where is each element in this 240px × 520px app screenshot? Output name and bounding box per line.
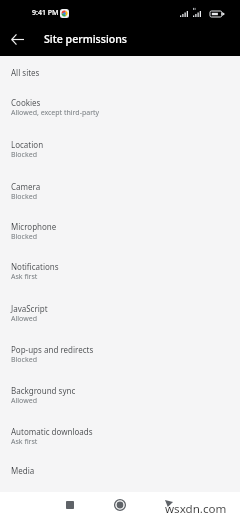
button[interactable]: Cookies xyxy=(0,87,240,128)
staticText: All sites xyxy=(11,67,40,78)
button[interactable]: Back xyxy=(161,496,176,511)
staticText: Blocked xyxy=(11,355,37,365)
staticText: Microphone xyxy=(11,221,57,232)
button[interactable]: Media xyxy=(0,455,240,485)
staticText: Site permissions xyxy=(44,32,128,46)
staticText: Allowed xyxy=(11,314,37,324)
staticText: JavaScript xyxy=(11,303,48,314)
button[interactable]: Camera xyxy=(0,171,240,212)
staticText: Blocked xyxy=(11,232,37,242)
button[interactable]: Pop-ups and redirects xyxy=(0,334,240,375)
staticText: Pop-ups and redirects xyxy=(11,344,94,355)
button[interactable]: JavaScript xyxy=(0,293,240,334)
button[interactable]: Notifications xyxy=(0,251,240,292)
staticText: Automatic downloads xyxy=(11,426,93,437)
button[interactable]: Automatic downloads xyxy=(0,416,240,457)
button[interactable]: Location xyxy=(0,129,240,170)
staticText: 9:41 PM xyxy=(32,8,59,18)
button[interactable]: All sites xyxy=(0,57,240,87)
staticText: Media xyxy=(11,465,35,476)
staticText: Camera xyxy=(11,181,41,192)
staticText: Background sync xyxy=(11,385,76,396)
staticText: Blocked xyxy=(11,192,37,202)
button[interactable]: Background sync xyxy=(0,375,240,416)
staticText: Location xyxy=(11,139,44,150)
staticText: wsxdn.com xyxy=(165,501,227,517)
staticText: Notifications xyxy=(11,261,59,272)
button[interactable]: Home xyxy=(112,497,128,513)
staticText: Allowed xyxy=(11,396,37,406)
staticText: Allowed, except third-party xyxy=(11,108,100,118)
staticText: Blocked xyxy=(11,150,37,160)
staticText: Cookies xyxy=(11,97,41,108)
button[interactable]: Back xyxy=(6,28,29,51)
button[interactable]: Recents xyxy=(62,497,78,513)
staticText: Ask first xyxy=(11,272,38,282)
staticText: Ask first xyxy=(11,437,38,447)
button[interactable]: Microphone xyxy=(0,211,240,252)
